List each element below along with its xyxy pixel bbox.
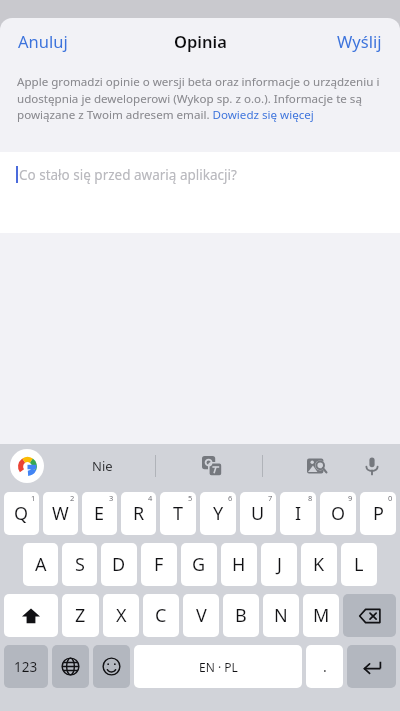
staticText: . xyxy=(323,657,327,676)
button[interactable]: I xyxy=(280,492,316,535)
staticText: B xyxy=(235,603,247,628)
button[interactable]: Google search xyxy=(10,449,44,483)
staticText: Opinia xyxy=(174,30,227,52)
button[interactable]: F xyxy=(141,543,177,586)
button[interactable]: E xyxy=(82,492,117,535)
staticText: 6 xyxy=(228,493,233,503)
button[interactable]: O xyxy=(320,492,356,535)
button[interactable]: Backspace xyxy=(343,594,396,637)
staticText: 1 xyxy=(31,493,36,503)
staticText: S xyxy=(75,552,85,577)
staticText: I xyxy=(295,501,302,526)
staticText: O xyxy=(331,501,346,526)
staticText: EN · PL xyxy=(199,659,238,675)
staticText: 7 xyxy=(268,493,273,503)
staticText: Wyślij xyxy=(337,30,382,52)
staticText: G xyxy=(192,552,206,577)
staticText: 9 xyxy=(348,493,353,503)
button[interactable]: N xyxy=(263,594,299,637)
button[interactable]: 123 xyxy=(4,645,48,688)
staticText: N xyxy=(274,603,288,628)
button[interactable]: Nie xyxy=(82,451,123,481)
button[interactable]: Translate xyxy=(195,449,229,483)
staticText: 2 xyxy=(70,493,75,503)
button[interactable]: P xyxy=(360,492,396,535)
staticText: Co stało się przed awarią aplikacji? xyxy=(19,166,237,184)
button[interactable]: J xyxy=(261,543,297,586)
staticText: Z xyxy=(75,603,86,628)
staticText: E xyxy=(94,501,105,526)
staticText: X xyxy=(116,603,127,628)
button[interactable]: X xyxy=(103,594,139,637)
staticText: 5 xyxy=(188,493,193,503)
staticText: D xyxy=(112,552,126,577)
button[interactable]: A xyxy=(23,543,58,586)
button[interactable]: M xyxy=(303,594,339,637)
staticText: V xyxy=(196,603,207,628)
staticText: A xyxy=(35,552,47,577)
staticText: 8 xyxy=(308,493,313,503)
button[interactable]: Shift xyxy=(4,594,58,637)
staticText: R xyxy=(133,501,145,526)
button[interactable]: H xyxy=(221,543,257,586)
button[interactable]: K xyxy=(301,543,337,586)
button[interactable]: G xyxy=(181,543,217,586)
staticText: W xyxy=(52,501,69,526)
staticText: 123 xyxy=(14,658,38,676)
button[interactable]: D xyxy=(101,543,137,586)
staticText: U xyxy=(251,501,265,526)
button[interactable]: Search images xyxy=(300,449,334,483)
staticText: Q xyxy=(14,501,29,526)
button[interactable]: L xyxy=(341,543,377,586)
button[interactable]: B xyxy=(223,594,259,637)
button[interactable]: Change language xyxy=(52,645,89,688)
staticText: F xyxy=(154,552,164,577)
staticText: Anuluj xyxy=(18,30,68,52)
button[interactable]: V xyxy=(183,594,219,637)
staticText: H xyxy=(232,552,246,577)
staticText: L xyxy=(354,552,364,577)
staticText: Y xyxy=(213,501,224,526)
button[interactable]: Emoji xyxy=(93,645,130,688)
button[interactable]: Anuluj xyxy=(6,24,80,58)
staticText: M xyxy=(313,603,330,628)
button[interactable]: W xyxy=(43,492,78,535)
staticText: K xyxy=(313,552,325,577)
staticText: J xyxy=(277,552,282,577)
staticText: Apple gromadzi opinie o wersji beta oraz… xyxy=(17,74,384,122)
staticText: 4 xyxy=(148,493,153,503)
staticText: P xyxy=(373,501,384,526)
button[interactable]: C xyxy=(143,594,179,637)
button[interactable]: U xyxy=(240,492,276,535)
staticText: T xyxy=(173,501,184,526)
button[interactable]: S xyxy=(62,543,97,586)
staticText: C xyxy=(155,603,167,628)
button[interactable]: Co stało się przed awarią aplikacji? xyxy=(0,152,400,233)
button[interactable]: . xyxy=(306,645,343,688)
button[interactable]: T xyxy=(160,492,196,535)
staticText: 3 xyxy=(109,493,114,503)
button[interactable]: R xyxy=(121,492,156,535)
staticText: 0 xyxy=(388,493,393,503)
button[interactable]: Y xyxy=(200,492,236,535)
button[interactable]: Voice input xyxy=(355,449,389,483)
button[interactable]: Wyślij xyxy=(325,24,394,58)
button[interactable]: Enter xyxy=(347,645,396,688)
button[interactable]: Z xyxy=(62,594,99,637)
button[interactable]: EN · PL xyxy=(134,645,302,688)
button[interactable]: Q xyxy=(4,492,39,535)
